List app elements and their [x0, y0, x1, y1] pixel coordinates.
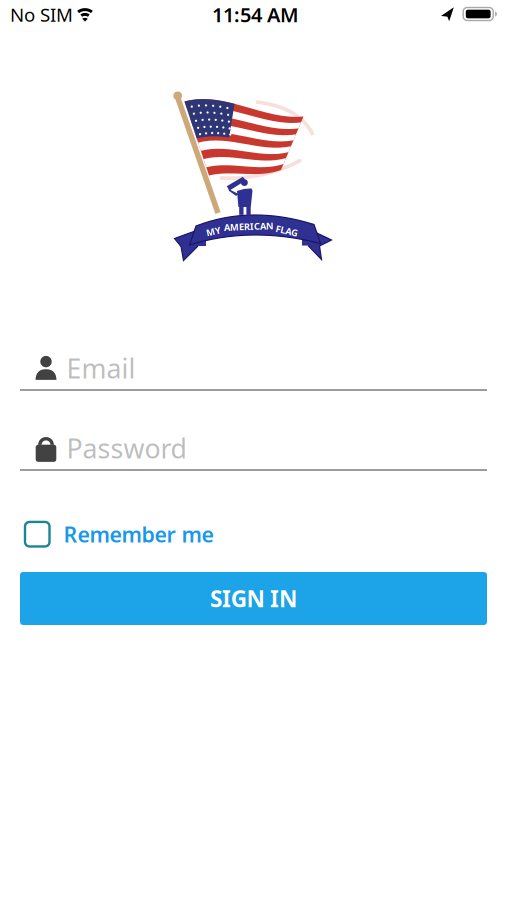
button[interactable]: Email — [20, 347, 487, 391]
button[interactable]: SIGN IN — [20, 572, 487, 625]
staticText: Password — [66, 430, 186, 466]
staticText: Email — [66, 350, 135, 386]
staticText: SIGN IN — [210, 583, 297, 613]
staticText: AMERICAN — [224, 220, 274, 233]
staticText: No SIM — [10, 2, 73, 27]
button[interactable]: Remember me — [25, 520, 305, 548]
staticText: Remember me — [63, 520, 213, 548]
staticText: FLAG — [275, 225, 298, 237]
staticText: MY — [206, 225, 221, 237]
button[interactable]: Password — [20, 427, 487, 471]
staticText: 11:54 AM — [212, 1, 299, 28]
